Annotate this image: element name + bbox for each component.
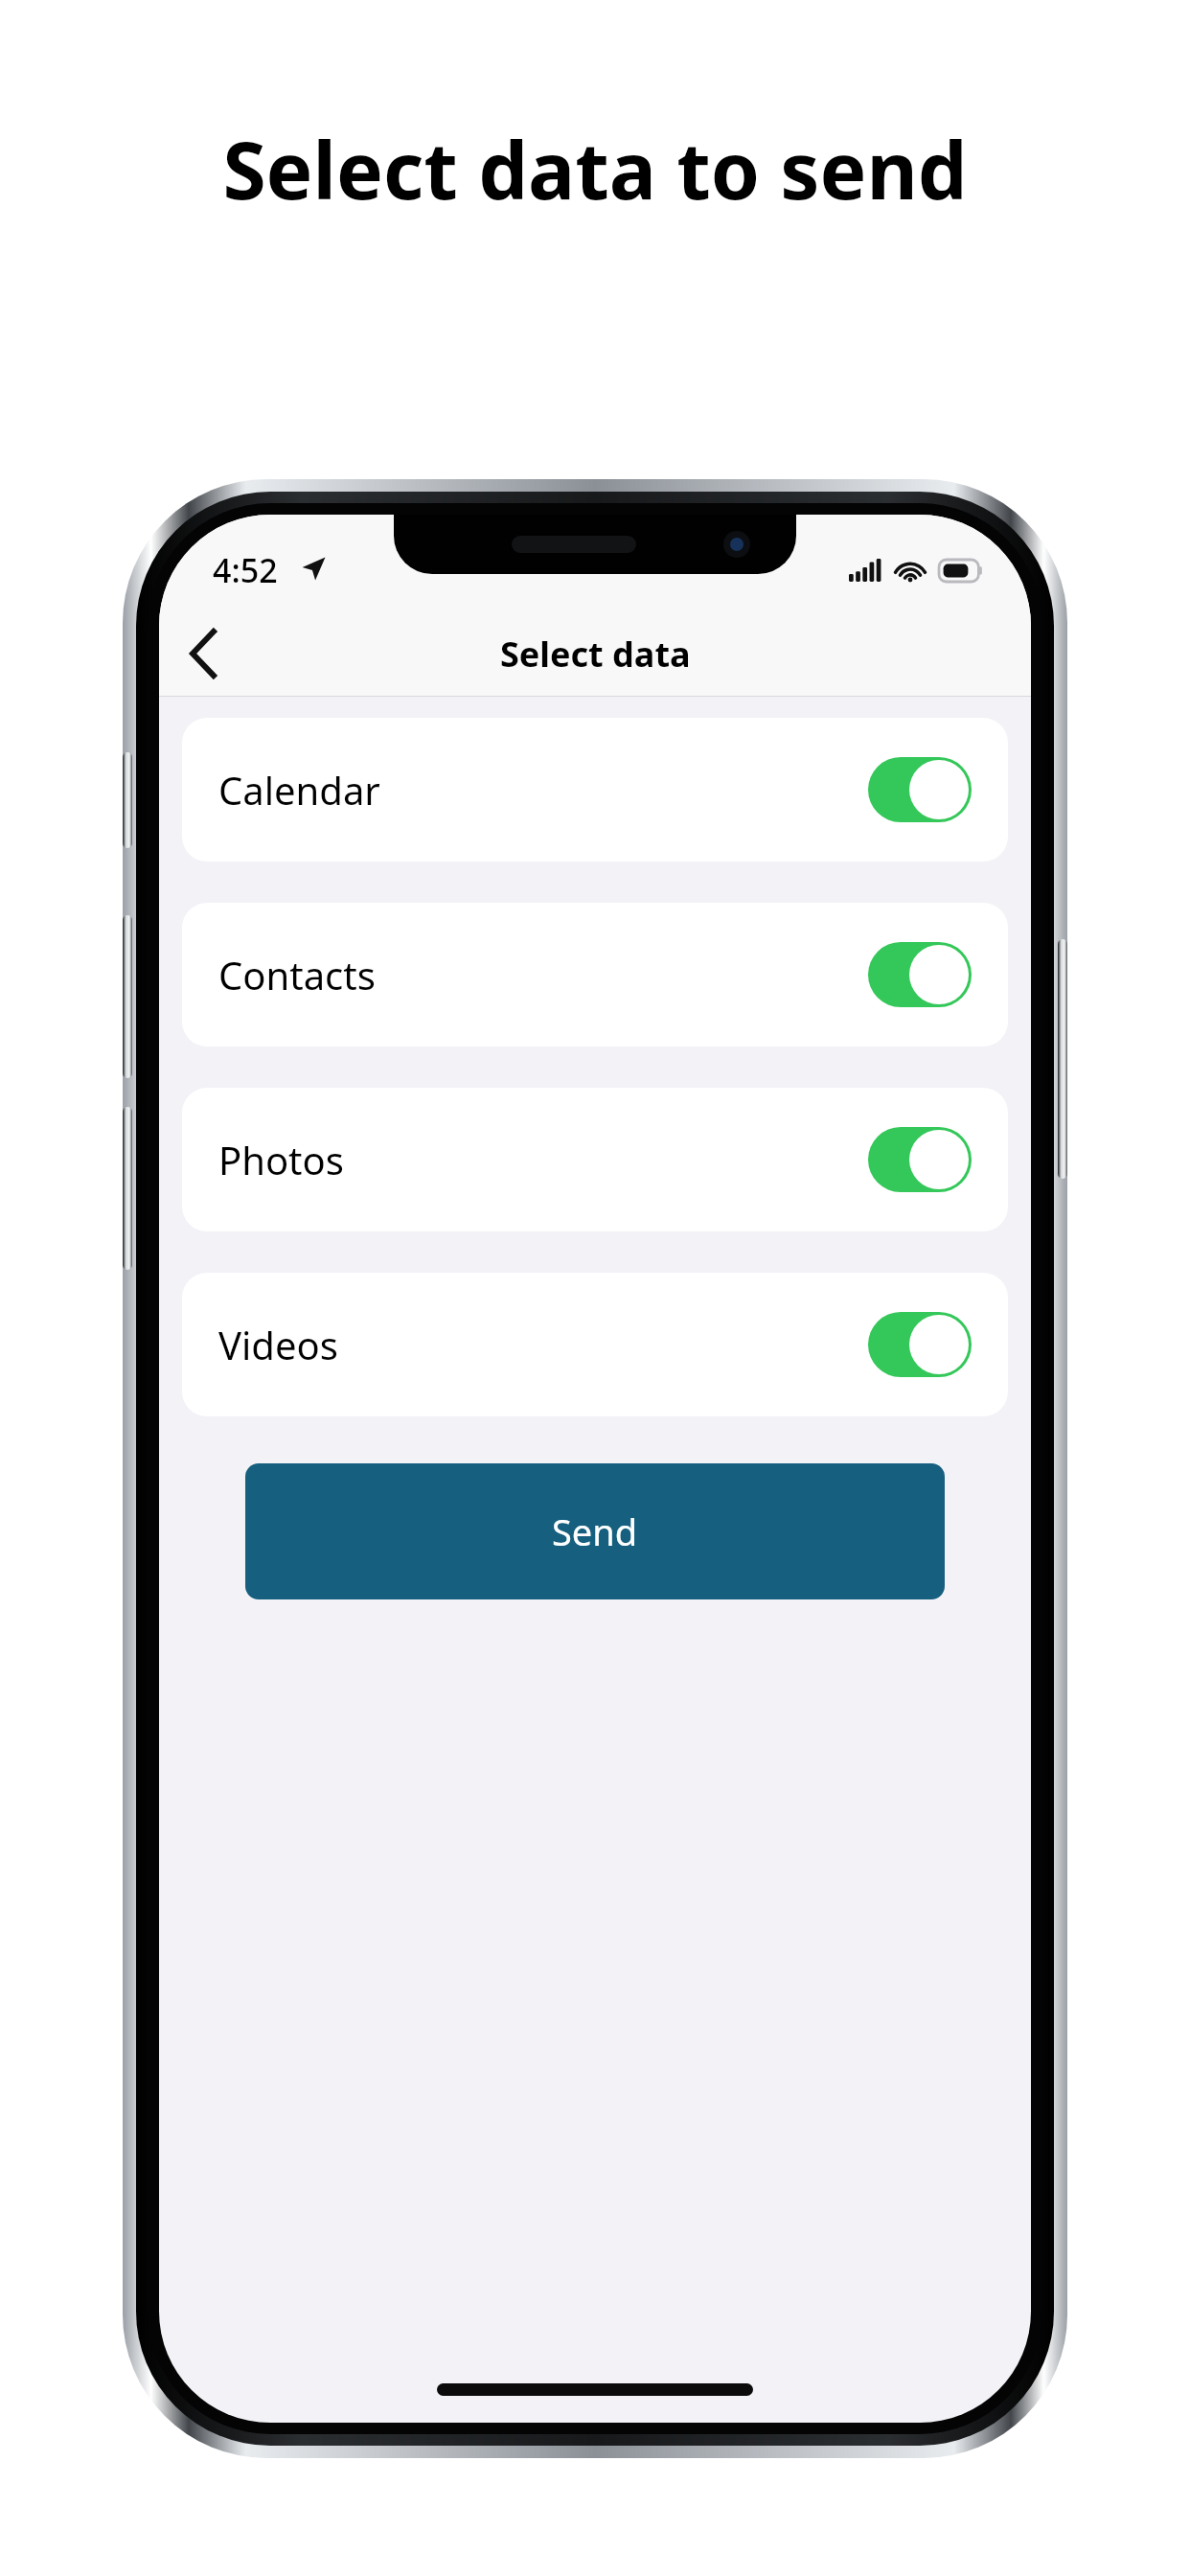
button[interactable]: Calendar toggle, on <box>868 757 972 822</box>
staticText: Select data <box>500 631 691 678</box>
button[interactable]: Back <box>159 610 255 697</box>
button[interactable]: Contacts toggle, on <box>868 942 972 1007</box>
staticText: Select data to send <box>0 115 1190 222</box>
staticText: Photos <box>218 1134 344 1185</box>
staticText: 4:52 <box>213 548 278 592</box>
button[interactable]: Send <box>245 1463 945 1599</box>
button[interactable]: Videos toggle, on <box>868 1312 972 1377</box>
button[interactable]: Calendar <box>182 718 1008 862</box>
button[interactable]: Photos toggle, on <box>868 1127 972 1192</box>
staticText: Videos <box>218 1319 338 1370</box>
button[interactable]: Contacts <box>182 903 1008 1046</box>
button[interactable]: Photos <box>182 1088 1008 1231</box>
staticText: Calendar <box>218 764 380 816</box>
staticText: Send <box>552 1506 638 1556</box>
button[interactable]: Videos <box>182 1273 1008 1416</box>
staticText: Contacts <box>218 949 376 1000</box>
